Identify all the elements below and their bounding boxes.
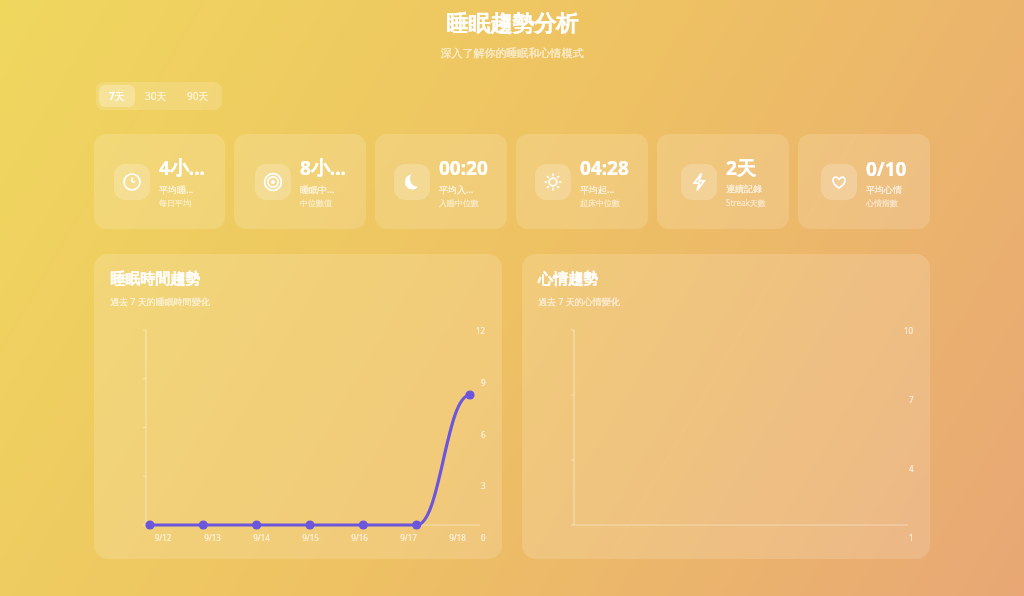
button[interactable]: 2天 xyxy=(657,134,789,229)
staticText: 過去 7 天的睡眠時間變化 xyxy=(110,295,210,307)
staticText: 7天 xyxy=(109,89,125,103)
staticText: 心情指數 xyxy=(866,198,898,208)
staticText: 10 xyxy=(904,325,914,336)
staticText: 4小... xyxy=(159,155,205,181)
staticText: 9 xyxy=(481,377,486,388)
staticText: 過去 7 天的心情變化 xyxy=(538,295,620,307)
button[interactable]: 90天 xyxy=(177,85,219,107)
staticText: 04:28 xyxy=(580,155,629,181)
staticText: 0 xyxy=(481,532,486,543)
staticText: 8小... xyxy=(300,155,346,181)
staticText: 平均睡... xyxy=(159,183,194,195)
staticText: 每日平均 xyxy=(159,198,191,208)
button[interactable]: 00:20 xyxy=(375,134,507,229)
staticText: 平均起... xyxy=(580,183,615,195)
button[interactable]: 4小... xyxy=(94,134,225,229)
staticText: 入睡中位數 xyxy=(439,198,479,208)
staticText: 睡眠中... xyxy=(300,183,335,195)
staticText: 9/16 xyxy=(335,532,384,543)
staticText: 平均心情 xyxy=(866,184,902,195)
staticText: 起床中位數 xyxy=(580,198,620,208)
button[interactable]: 0/10 xyxy=(798,134,930,229)
staticText: 90天 xyxy=(187,89,209,103)
staticText: 深入了解你的睡眠和心情模式 xyxy=(0,46,1024,60)
staticText: Streak天數 xyxy=(726,197,766,208)
staticText: 睡眠趨勢分析 xyxy=(0,10,1024,38)
staticText: 0/10 xyxy=(866,156,907,182)
staticText: 1 xyxy=(909,532,914,543)
staticText: 睡眠時間趨勢 xyxy=(110,270,200,289)
staticText: 3 xyxy=(481,480,486,491)
staticText: 9/17 xyxy=(384,532,433,543)
staticText: 平均入... xyxy=(439,183,474,195)
staticText: 4 xyxy=(909,463,914,474)
button[interactable]: 心情趨勢 xyxy=(522,254,930,559)
staticText: 心情趨勢 xyxy=(538,270,598,289)
staticText: 00:20 xyxy=(439,155,488,181)
staticText: 9/13 xyxy=(188,532,237,543)
staticText: 9/15 xyxy=(286,532,335,543)
staticText: 2天 xyxy=(726,155,756,181)
button[interactable]: 04:28 xyxy=(516,134,648,229)
staticText: 9/18 xyxy=(433,532,482,543)
button[interactable]: 7天 xyxy=(99,85,135,107)
button[interactable]: 8小... xyxy=(234,134,366,229)
staticText: 9/12 xyxy=(138,532,188,543)
staticText: 30天 xyxy=(145,89,167,103)
staticText: 7 xyxy=(909,394,914,405)
button[interactable]: 睡眠時間趨勢 xyxy=(94,254,502,559)
staticText: 連續記錄 xyxy=(726,183,762,194)
button[interactable]: 30天 xyxy=(135,85,177,107)
staticText: 6 xyxy=(481,429,486,440)
staticText: 中位數值 xyxy=(300,198,332,208)
staticText: 12 xyxy=(476,325,486,336)
staticText: 9/14 xyxy=(237,532,286,543)
